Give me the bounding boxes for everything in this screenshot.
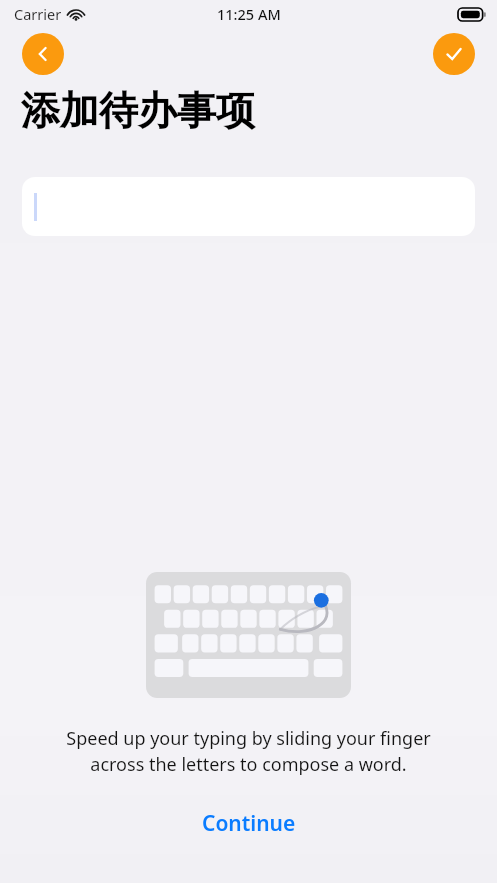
staticText: Continue xyxy=(202,809,296,838)
staticText: Carrier xyxy=(14,4,62,24)
button[interactable] xyxy=(22,177,475,236)
staticText: Speed up your typing by sliding your fin… xyxy=(66,726,431,777)
staticText: 添加待办事项 xyxy=(21,86,255,135)
button[interactable]: Back xyxy=(22,33,64,75)
staticText: 11:25 AM xyxy=(217,4,281,24)
button[interactable]: Continue xyxy=(184,803,314,844)
button[interactable]: Done xyxy=(433,33,475,75)
